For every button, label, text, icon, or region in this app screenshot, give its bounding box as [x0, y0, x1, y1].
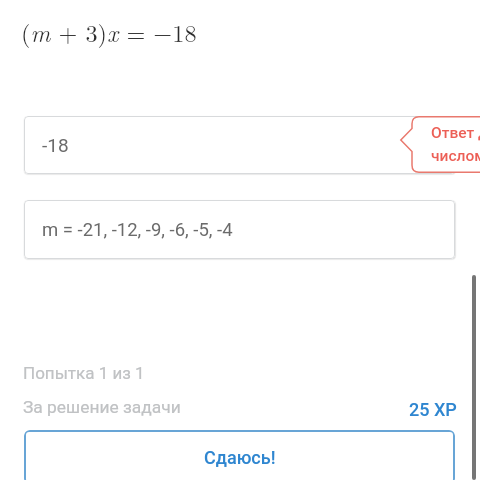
- staticText: -18: [42, 134, 69, 156]
- staticText: (m + 3)x = −18: [21, 15, 197, 49]
- staticText: Ответ должен быть числом: [431, 124, 480, 165]
- staticText: m = -21, -12, -9, -6, -5, -4: [42, 219, 233, 241]
- staticText: 25 XP: [409, 399, 457, 420]
- staticText: Попытка 1 из 1: [23, 363, 145, 383]
- button[interactable]: -18: [24, 116, 455, 174]
- button[interactable]: m = -21, -12, -9, -6, -5, -4: [24, 200, 455, 259]
- staticText: Сдаюсь!: [204, 447, 276, 468]
- staticText: За решение задачи: [23, 397, 181, 417]
- button[interactable]: Сдаюсь!: [24, 430, 455, 480]
